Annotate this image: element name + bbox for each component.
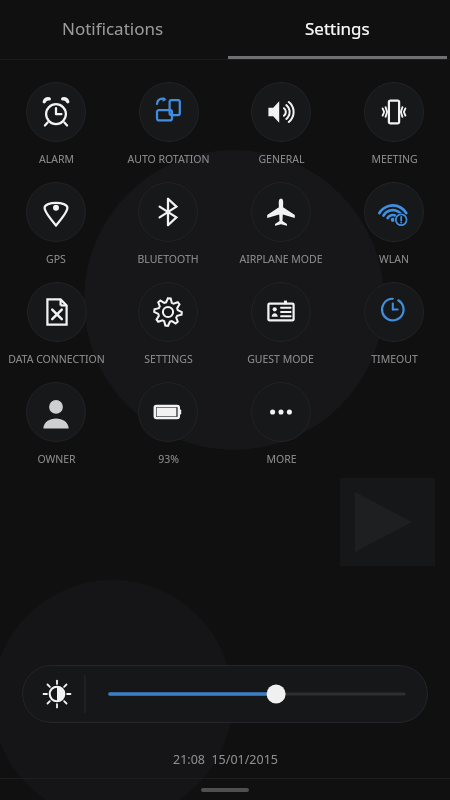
button[interactable]: ALARM bbox=[26, 82, 86, 168]
button[interactable]: Settings bbox=[225, 0, 450, 56]
staticText: 93% bbox=[158, 452, 179, 466]
button[interactable]: GUEST MODE bbox=[247, 282, 314, 368]
button[interactable]: DATA CONNECTION bbox=[8, 282, 105, 368]
other: AIRPLANE MODE bbox=[251, 182, 311, 242]
other: OWNER bbox=[26, 382, 86, 442]
staticText: MEETING bbox=[371, 152, 418, 166]
staticText: Settings bbox=[305, 17, 370, 40]
other: ALARM bbox=[26, 82, 86, 142]
button[interactable]: GPS bbox=[26, 182, 86, 268]
staticText: ALARM bbox=[39, 152, 74, 166]
button[interactable]: AUTO ROTATION bbox=[127, 82, 210, 168]
staticText: WLAN bbox=[379, 252, 409, 266]
other: GENERAL bbox=[251, 82, 311, 142]
staticText: SETTINGS bbox=[144, 352, 193, 366]
button[interactable]: MORE bbox=[251, 382, 311, 468]
staticText: BLUETOOTH bbox=[137, 252, 199, 266]
other: 93% bbox=[138, 382, 198, 442]
other: WLAN bbox=[364, 182, 424, 242]
button[interactable]: 93% bbox=[138, 382, 198, 468]
staticText: GPS bbox=[46, 252, 66, 266]
other: GUEST MODE bbox=[251, 282, 311, 342]
staticText: DATA CONNECTION bbox=[8, 352, 105, 366]
staticText: GENERAL bbox=[258, 152, 305, 166]
other: GPS bbox=[26, 182, 86, 242]
button[interactable]: TIMEOUT bbox=[364, 282, 424, 368]
button[interactable]: SETTINGS bbox=[138, 282, 198, 368]
staticText: TIMEOUT bbox=[371, 352, 418, 366]
button[interactable]: MEETING bbox=[364, 82, 424, 168]
staticText: AIRPLANE MODE bbox=[239, 252, 323, 266]
button[interactable]: GENERAL bbox=[251, 82, 311, 168]
other: MORE bbox=[251, 382, 311, 442]
button[interactable]: AIRPLANE MODE bbox=[239, 182, 323, 268]
button[interactable]: OWNER bbox=[26, 382, 86, 468]
button[interactable]: Notifications bbox=[0, 0, 225, 56]
staticText: GUEST MODE bbox=[247, 352, 314, 366]
button[interactable] bbox=[22, 665, 428, 723]
staticText: AUTO ROTATION bbox=[127, 152, 210, 166]
staticText: 21:08 15/01/2015 bbox=[173, 751, 278, 768]
other: MEETING bbox=[364, 82, 424, 142]
other: BLUETOOTH bbox=[138, 182, 198, 242]
other: AUTO ROTATION bbox=[139, 82, 199, 142]
button[interactable]: Drag handle bbox=[201, 788, 249, 792]
other: DATA CONNECTION bbox=[27, 282, 87, 342]
staticText: OWNER bbox=[37, 452, 76, 466]
button[interactable]: BLUETOOTH bbox=[137, 182, 199, 268]
other: SETTINGS bbox=[138, 282, 198, 342]
staticText: Notifications bbox=[62, 17, 164, 40]
staticText: MORE bbox=[266, 452, 297, 466]
other: TIMEOUT bbox=[364, 282, 424, 342]
button[interactable]: WLAN bbox=[364, 182, 424, 268]
